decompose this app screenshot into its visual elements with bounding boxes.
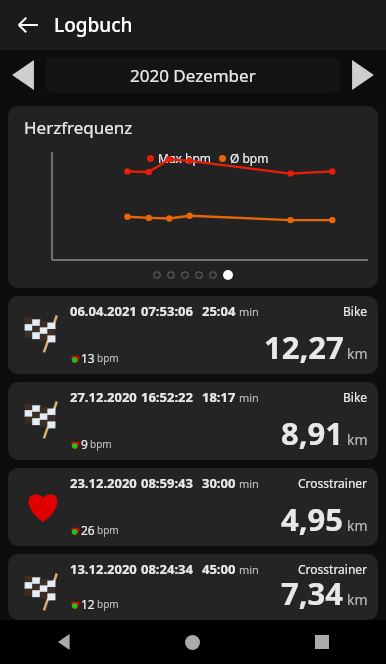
staticText: Crosstrainer xyxy=(298,561,368,577)
staticText: 8,91 xyxy=(281,412,344,454)
button[interactable]: Back xyxy=(10,7,46,43)
staticText: 45:00 xyxy=(202,560,236,578)
button[interactable]: 23.12.2020 xyxy=(8,468,378,546)
staticText: bpm xyxy=(90,437,112,451)
staticText: 7,34 xyxy=(281,572,344,614)
staticText: min xyxy=(239,390,259,405)
staticText: bpm xyxy=(97,523,119,537)
staticText: 12 xyxy=(81,596,95,612)
staticText: Crosstrainer xyxy=(298,475,368,491)
staticText: min xyxy=(239,476,259,491)
staticText: 13.12.2020 xyxy=(70,560,137,578)
button[interactable]: Herzfrequenz xyxy=(8,106,378,288)
staticText: 2020 Dezember xyxy=(130,64,256,87)
staticText: 4,95 xyxy=(281,498,344,540)
staticText: min xyxy=(239,562,259,577)
staticText: 9 xyxy=(81,436,88,452)
staticText: 08:59:43 xyxy=(141,474,193,492)
button[interactable]: Back xyxy=(0,620,128,664)
staticText: 12,27 xyxy=(264,326,344,368)
staticText: 26 xyxy=(81,522,95,538)
staticText: Ø bpm xyxy=(230,150,269,166)
staticText: Logbuch xyxy=(54,12,133,38)
staticText: 25:04 xyxy=(202,302,236,320)
staticText: 30:00 xyxy=(202,474,236,492)
staticText: 06.04.2021 xyxy=(70,302,137,320)
button[interactable]: Recent apps xyxy=(257,620,386,664)
staticText: Bike xyxy=(343,303,368,319)
button[interactable]: 2020 Dezember xyxy=(46,57,340,93)
staticText: min xyxy=(239,304,259,319)
staticText: 07:53:06 xyxy=(141,302,193,320)
staticText: 08:24:34 xyxy=(141,560,193,578)
staticText: Herzfrequenz xyxy=(24,116,133,139)
staticText: km xyxy=(347,590,368,609)
staticText: 18:17 xyxy=(202,388,236,406)
staticText: km xyxy=(347,430,368,449)
button[interactable]: Home xyxy=(128,620,257,664)
staticText: 23.12.2020 xyxy=(70,474,137,492)
staticText: 16:52:22 xyxy=(141,388,193,406)
staticText: km xyxy=(347,344,368,363)
staticText: bpm xyxy=(97,597,119,611)
staticText: Bike xyxy=(343,389,368,405)
staticText: 27.12.2020 xyxy=(70,388,137,406)
button[interactable]: 27.12.2020 xyxy=(8,382,378,460)
button[interactable]: Previous month xyxy=(6,58,40,92)
staticText: 13 xyxy=(81,350,95,366)
staticText: bpm xyxy=(97,351,119,365)
staticText: km xyxy=(347,516,368,535)
staticText: Max bpm xyxy=(158,150,212,166)
button[interactable]: Next month xyxy=(346,58,380,92)
button[interactable]: 13.12.2020 xyxy=(8,554,378,620)
button[interactable]: 06.04.2021 xyxy=(8,296,378,374)
